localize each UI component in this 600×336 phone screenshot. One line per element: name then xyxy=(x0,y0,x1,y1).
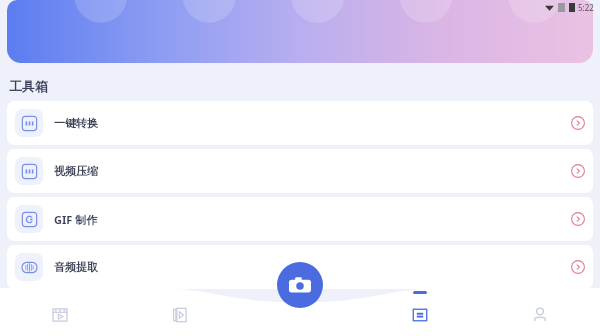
staticText: 工具箱 xyxy=(9,78,48,94)
staticText: 视频压缩 xyxy=(54,164,98,178)
button[interactable]: GIF 制作 xyxy=(7,197,593,241)
button[interactable]: Profile xyxy=(480,288,600,336)
button[interactable]: Camera xyxy=(277,262,323,308)
button[interactable]: Clips xyxy=(120,288,240,336)
button[interactable]: Tools xyxy=(360,288,480,336)
button[interactable]: 音频提取 xyxy=(7,245,593,289)
button[interactable]: 一键转换 xyxy=(7,101,593,145)
button[interactable]: Video editor xyxy=(0,288,120,336)
button[interactable]: 视频压缩 xyxy=(7,149,593,193)
staticText: 一键转换 xyxy=(54,116,98,130)
staticText: 音频提取 xyxy=(54,260,98,274)
staticText: GIF 制作 xyxy=(54,212,98,227)
staticText: 5:22 xyxy=(578,2,594,13)
